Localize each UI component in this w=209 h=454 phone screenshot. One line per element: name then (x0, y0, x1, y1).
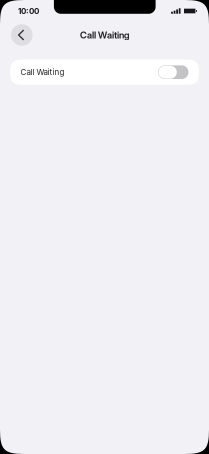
button[interactable]: Call Waiting (10, 59, 199, 85)
staticText: Call Waiting (20, 67, 64, 77)
staticText: 10:00 (18, 6, 39, 16)
button[interactable]: Back (11, 24, 33, 46)
staticText: Call Waiting (80, 29, 129, 41)
